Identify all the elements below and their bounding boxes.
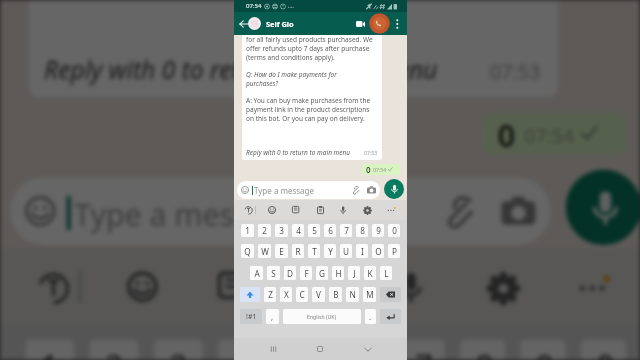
button[interactable]: 4 (218, 340, 263, 360)
button[interactable]: Voice typing (25, 260, 78, 313)
button[interactable]: More (566, 260, 619, 313)
button[interactable]: E (275, 244, 288, 258)
button[interactable]: U (340, 244, 352, 258)
button[interactable]: Voice typing (241, 203, 255, 217)
button[interactable]: G (316, 266, 328, 280)
button[interactable]: 5 (308, 224, 320, 237)
button[interactable]: 2 (258, 224, 271, 237)
staticText: 9 (376, 225, 381, 236)
button[interactable]: Voice input (384, 260, 437, 313)
button[interactable]: Settings (475, 260, 528, 313)
staticText: L (384, 268, 389, 279)
button[interactable] (380, 309, 401, 324)
button[interactable]: K (364, 266, 376, 280)
button[interactable]: Stickers (289, 203, 303, 217)
button[interactable]: Type a message (237, 181, 380, 199)
button[interactable]: P (388, 244, 400, 258)
button[interactable]: 1 (241, 224, 254, 237)
button[interactable]: . (365, 309, 376, 324)
button[interactable]: Attach (437, 192, 475, 230)
staticText: 1 (40, 343, 59, 360)
button[interactable]: Hide keyboard (358, 339, 378, 359)
button[interactable]: 3 (275, 224, 288, 237)
button[interactable]: 3 (154, 340, 203, 360)
button[interactable]: L (380, 266, 392, 280)
button[interactable]: N (346, 287, 359, 302)
button[interactable]: 8 (356, 224, 368, 237)
button[interactable]: 8 (460, 340, 505, 360)
button[interactable] (380, 287, 401, 302)
button[interactable]: Z (264, 287, 276, 302)
button[interactable]: 0 (581, 340, 626, 360)
button[interactable]: Settings (360, 203, 374, 217)
staticText: X (284, 289, 289, 300)
button[interactable]: Contact photo (248, 17, 261, 30)
button[interactable]: 6 (339, 340, 384, 360)
button[interactable]: Emoji (265, 203, 279, 217)
button[interactable]: Emoji (116, 260, 169, 313)
button[interactable]: X (280, 287, 292, 302)
button[interactable]: Type a message (10, 177, 550, 245)
staticText: 07:54 (246, 2, 262, 10)
button[interactable]: D (284, 266, 296, 280)
button[interactable]: More (384, 203, 398, 217)
button[interactable]: Back (237, 17, 251, 31)
button[interactable]: 4 (292, 224, 304, 237)
button[interactable]: 7 (340, 224, 352, 237)
button[interactable]: 2 (89, 340, 138, 360)
button[interactable]: C (296, 287, 308, 302)
button[interactable]: Video call (352, 15, 369, 32)
button[interactable]: , (266, 309, 279, 324)
button[interactable]: 5 (278, 340, 324, 360)
button[interactable]: W (258, 244, 271, 258)
button[interactable]: Voice input (336, 203, 350, 217)
button[interactable]: 9 (372, 224, 384, 237)
button[interactable]: Stickers (207, 260, 259, 313)
button[interactable]: I (356, 244, 368, 258)
button[interactable]: H (332, 266, 344, 280)
button[interactable]: J (348, 266, 360, 280)
staticText: Z (268, 289, 273, 300)
button[interactable]: Attach (350, 185, 360, 195)
button[interactable]: Camera (498, 192, 535, 230)
staticText: . (369, 311, 372, 322)
button[interactable]: Record voice message (566, 169, 640, 245)
button[interactable]: 6 (324, 224, 336, 237)
staticText: F (304, 268, 309, 279)
button[interactable]: 7 (399, 340, 445, 360)
button[interactable]: B (329, 287, 342, 302)
button[interactable]: 0 (362, 164, 400, 175)
button[interactable]: 1 (25, 340, 74, 360)
button[interactable]: M (363, 287, 376, 302)
staticText: B (333, 289, 339, 300)
button[interactable]: F (300, 266, 312, 280)
button[interactable]: T (308, 244, 320, 258)
button[interactable]: !#1 (240, 309, 262, 324)
button[interactable]: Q (241, 244, 254, 258)
button[interactable]: Camera (366, 185, 376, 195)
button[interactable]: R (292, 244, 304, 258)
staticText: 0 (366, 164, 371, 175)
button[interactable]: Voice call (369, 13, 390, 34)
staticText: N (349, 289, 356, 300)
button[interactable]: Recents (263, 339, 283, 359)
button[interactable]: Clipboard (297, 260, 350, 313)
button[interactable]: Clipboard (313, 203, 327, 217)
button[interactable]: A (250, 266, 263, 280)
staticText: 7 (414, 343, 433, 360)
button[interactable]: V (312, 287, 325, 302)
button[interactable]: 0 (388, 224, 400, 237)
button[interactable]: 0 (482, 113, 626, 154)
button[interactable]: Record voice message (384, 179, 404, 199)
button[interactable]: O (372, 244, 384, 258)
staticText: 5 (312, 225, 317, 236)
button[interactable]: 9 (520, 340, 566, 360)
button[interactable]: Y (324, 244, 336, 258)
button[interactable] (240, 287, 260, 302)
button[interactable]: Home (310, 339, 330, 359)
button[interactable]: S (267, 266, 280, 280)
staticText: G (319, 268, 325, 279)
staticText: O (375, 246, 382, 257)
button[interactable]: More options (390, 17, 404, 31)
button[interactable]: English (UK) (283, 309, 361, 324)
